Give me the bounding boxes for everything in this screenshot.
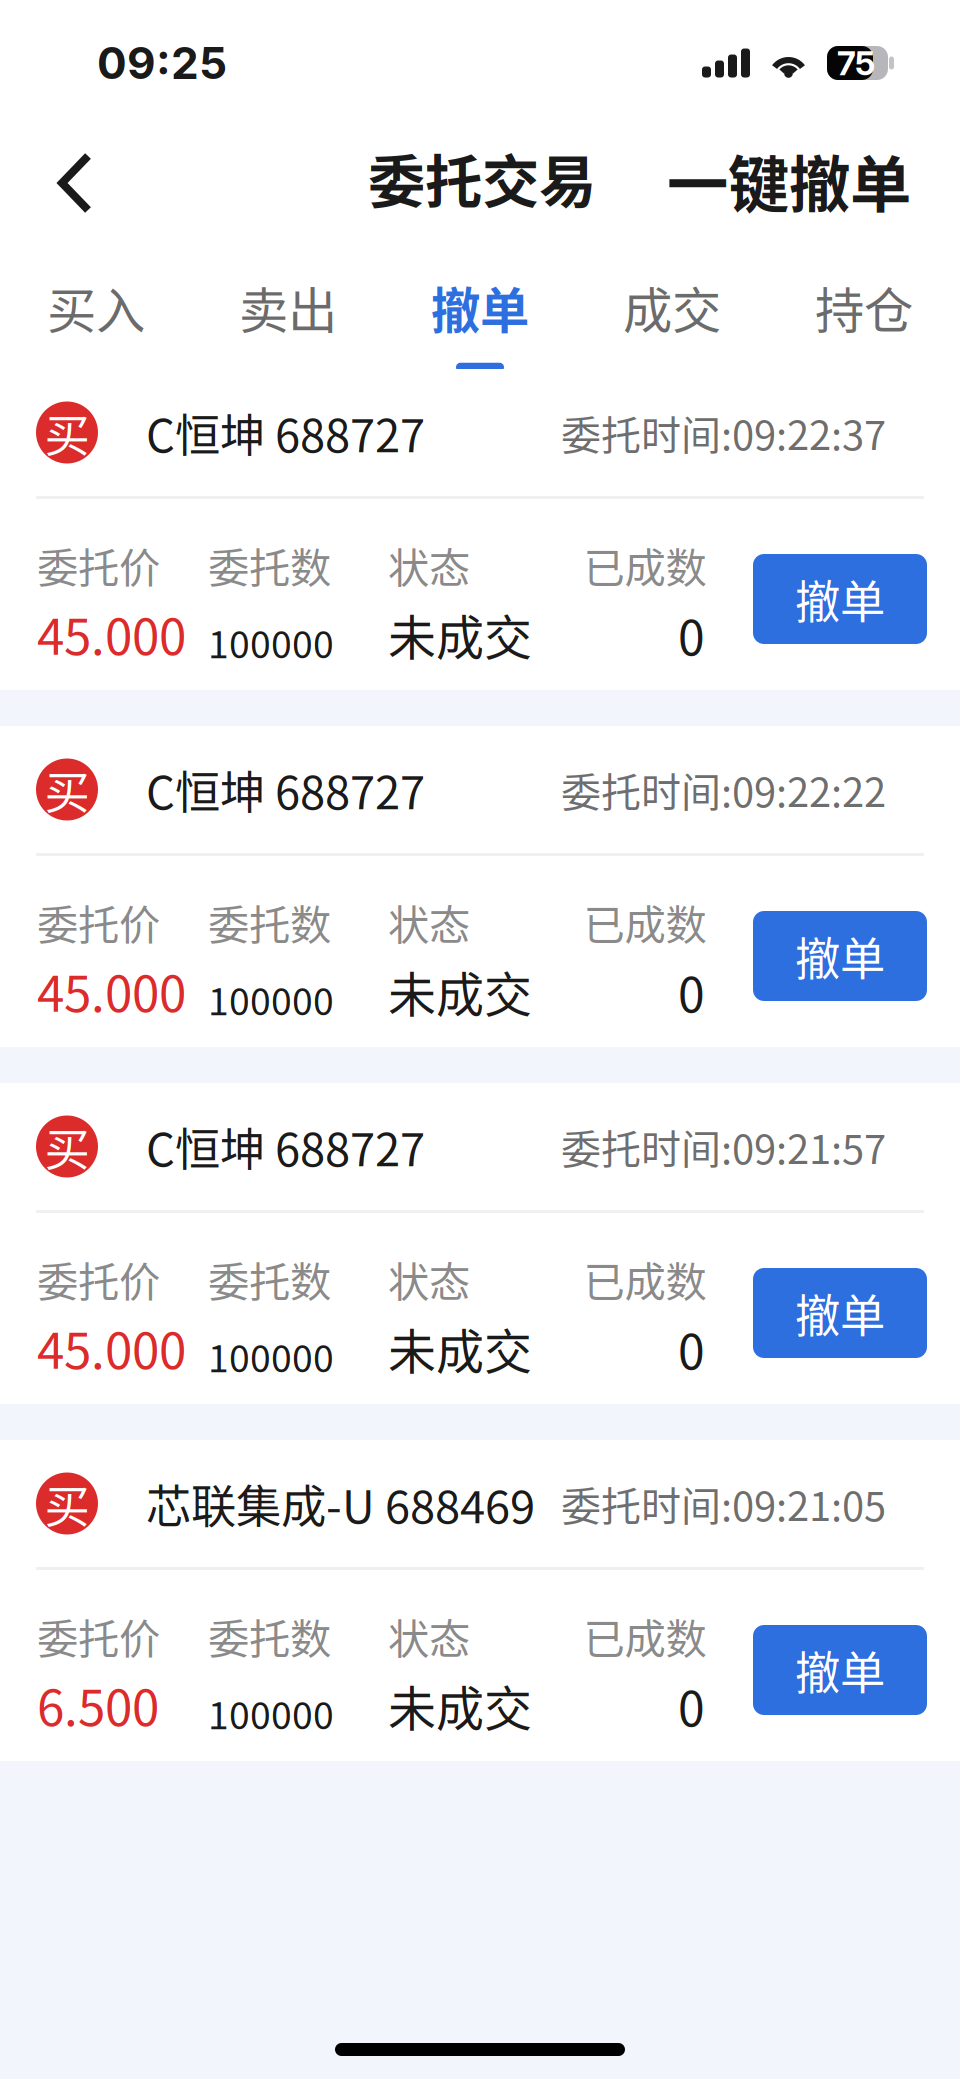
button[interactable]: 撤单 <box>384 240 576 369</box>
staticText: 已成数 <box>583 1249 706 1309</box>
staticText: C恒坤 688727 <box>146 1114 425 1179</box>
staticText: 45.000 <box>37 1312 186 1383</box>
staticText: 0 <box>678 599 705 669</box>
button[interactable]: 撤单 <box>753 554 927 644</box>
staticText: 100000 <box>208 615 334 669</box>
button[interactable]: 持仓 <box>768 240 960 369</box>
staticText: 0 <box>678 1313 705 1383</box>
staticText: 委托价 <box>37 1606 160 1666</box>
staticText: 委托时间:09:22:37 <box>561 403 886 461</box>
staticText: 芯联集成-U 688469 <box>146 1471 535 1536</box>
staticText: 卖出 <box>239 271 337 343</box>
staticText: 撤单 <box>431 271 529 343</box>
staticText: 买 <box>44 1114 89 1179</box>
staticText: 持仓 <box>815 271 913 343</box>
staticText: 委托价 <box>37 892 160 952</box>
button[interactable]: 撤单 <box>753 1268 927 1358</box>
staticText: 0 <box>678 956 705 1026</box>
staticText: 撤单 <box>795 1637 885 1703</box>
staticText: 100000 <box>208 1686 334 1740</box>
staticText: 委托价 <box>37 535 160 595</box>
staticText: 0 <box>678 1670 705 1740</box>
staticText: 委托数 <box>208 1606 331 1666</box>
staticText: 75 <box>837 43 875 83</box>
staticText: 45.000 <box>37 955 186 1026</box>
staticText: 09:25 <box>97 36 227 90</box>
staticText: 未成交 <box>388 956 532 1026</box>
button[interactable]: 返回 <box>0 126 125 240</box>
staticText: 45.000 <box>37 598 186 669</box>
button[interactable]: 成交 <box>576 240 768 369</box>
staticText: 委托时间:09:21:57 <box>561 1117 886 1175</box>
staticText: 委托数 <box>208 892 331 952</box>
staticText: 买 <box>44 400 89 465</box>
staticText: 撤单 <box>795 923 885 989</box>
staticText: 100000 <box>208 972 334 1026</box>
staticText: 买 <box>44 1471 89 1536</box>
staticText: C恒坤 688727 <box>146 400 425 465</box>
staticText: 一键撤单 <box>667 136 911 225</box>
button[interactable]: 卖出 <box>192 240 384 369</box>
staticText: 状态 <box>388 1249 470 1309</box>
staticText: 委托数 <box>208 1249 331 1309</box>
staticText: 成交 <box>623 271 721 343</box>
staticText: 委托数 <box>208 535 331 595</box>
staticText: 未成交 <box>388 599 532 669</box>
staticText: 撤单 <box>795 566 885 632</box>
staticText: 委托时间:09:22:22 <box>561 760 886 818</box>
staticText: 买 <box>44 757 89 822</box>
staticText: 状态 <box>388 1606 470 1666</box>
staticText: 已成数 <box>583 535 706 595</box>
staticText: 未成交 <box>388 1670 532 1740</box>
staticText: 状态 <box>388 535 470 595</box>
staticText: 未成交 <box>388 1313 532 1383</box>
staticText: 委托时间:09:21:05 <box>561 1474 886 1532</box>
staticText: 买入 <box>47 271 145 343</box>
staticText: 已成数 <box>583 892 706 952</box>
staticText: C恒坤 688727 <box>146 757 425 822</box>
button[interactable]: 买入 <box>0 240 192 369</box>
staticText: 撤单 <box>795 1280 885 1346</box>
staticText: 已成数 <box>583 1606 706 1666</box>
staticText: 委托价 <box>37 1249 160 1309</box>
staticText: 委托交易 <box>368 136 596 219</box>
staticText: 状态 <box>388 892 470 952</box>
button[interactable]: 一键撤单 <box>667 122 911 244</box>
staticText: 6.500 <box>37 1669 159 1740</box>
button[interactable]: 撤单 <box>753 1625 927 1715</box>
staticText: 100000 <box>208 1329 334 1383</box>
button[interactable]: 撤单 <box>753 911 927 1001</box>
